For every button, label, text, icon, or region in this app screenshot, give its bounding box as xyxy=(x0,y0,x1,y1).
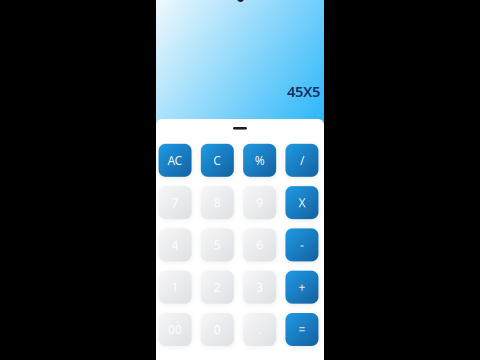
staticText: X xyxy=(298,195,305,210)
staticText: 3 xyxy=(256,279,263,295)
staticText: + xyxy=(298,279,305,295)
button[interactable]: - xyxy=(285,228,318,261)
staticText: . xyxy=(258,321,261,337)
staticText: 7 xyxy=(172,195,179,210)
button[interactable]: 9 xyxy=(243,186,276,219)
button[interactable]: 0 xyxy=(201,313,234,346)
button[interactable]: = xyxy=(285,313,318,346)
staticText: 0 xyxy=(214,321,221,337)
button[interactable]: C xyxy=(201,144,234,177)
staticText: - xyxy=(300,237,304,253)
button[interactable]: 00 xyxy=(159,313,192,346)
button[interactable]: 4 xyxy=(159,228,192,261)
staticText: C xyxy=(213,152,221,168)
staticText: 00 xyxy=(168,321,182,337)
button[interactable]: 3 xyxy=(243,271,276,304)
button[interactable]: 5 xyxy=(201,228,234,261)
button[interactable]: / xyxy=(285,144,318,177)
button[interactable]: 6 xyxy=(243,228,276,261)
button[interactable]: . xyxy=(243,313,276,346)
staticText: AC xyxy=(168,152,183,168)
button[interactable]: 8 xyxy=(201,186,234,219)
button[interactable]: 2 xyxy=(201,271,234,304)
staticText: % xyxy=(255,152,265,168)
staticText: 1 xyxy=(172,279,179,295)
staticText: 8 xyxy=(214,195,221,210)
staticText: 45X5 xyxy=(287,81,320,101)
staticText: 6 xyxy=(256,237,263,253)
button[interactable]: 7 xyxy=(159,186,192,219)
staticText: 4 xyxy=(172,237,179,253)
staticText: 2 xyxy=(214,279,221,295)
staticText: 9 xyxy=(256,195,263,210)
button[interactable]: + xyxy=(285,271,318,304)
button[interactable]: X xyxy=(285,186,318,219)
button[interactable]: 1 xyxy=(159,271,192,304)
button[interactable]: % xyxy=(243,144,276,177)
staticText: = xyxy=(298,321,305,337)
button[interactable]: AC xyxy=(159,144,192,177)
staticText: / xyxy=(300,152,304,168)
staticText: 5 xyxy=(214,237,221,253)
